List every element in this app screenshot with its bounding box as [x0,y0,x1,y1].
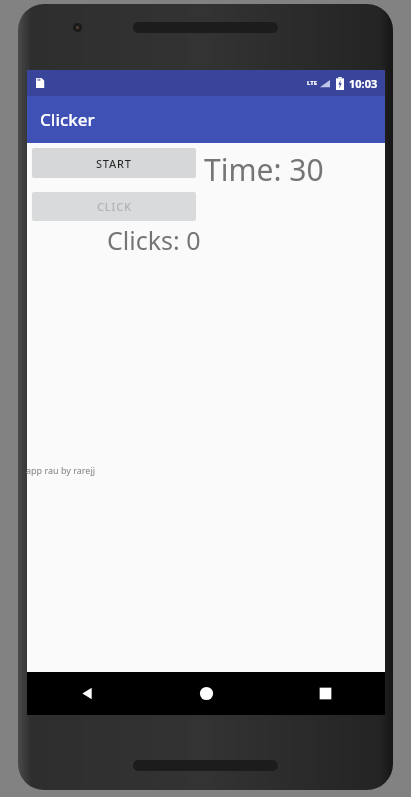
button[interactable]: Home [147,672,266,715]
button[interactable]: Recent apps [266,672,385,715]
button[interactable]: CLICK [32,192,196,221]
staticText: 10:03 [349,76,378,91]
staticText: START [96,156,132,171]
button[interactable]: Back [27,672,147,715]
staticText: LTE [307,79,318,87]
staticText: Clicks: 0 [107,223,201,257]
staticText: Time: 30 [204,149,324,190]
staticText: app rau by rarejj [26,464,96,476]
staticText: Clicker [40,108,95,131]
staticText: CLICK [97,199,132,214]
button[interactable]: START [32,148,196,178]
